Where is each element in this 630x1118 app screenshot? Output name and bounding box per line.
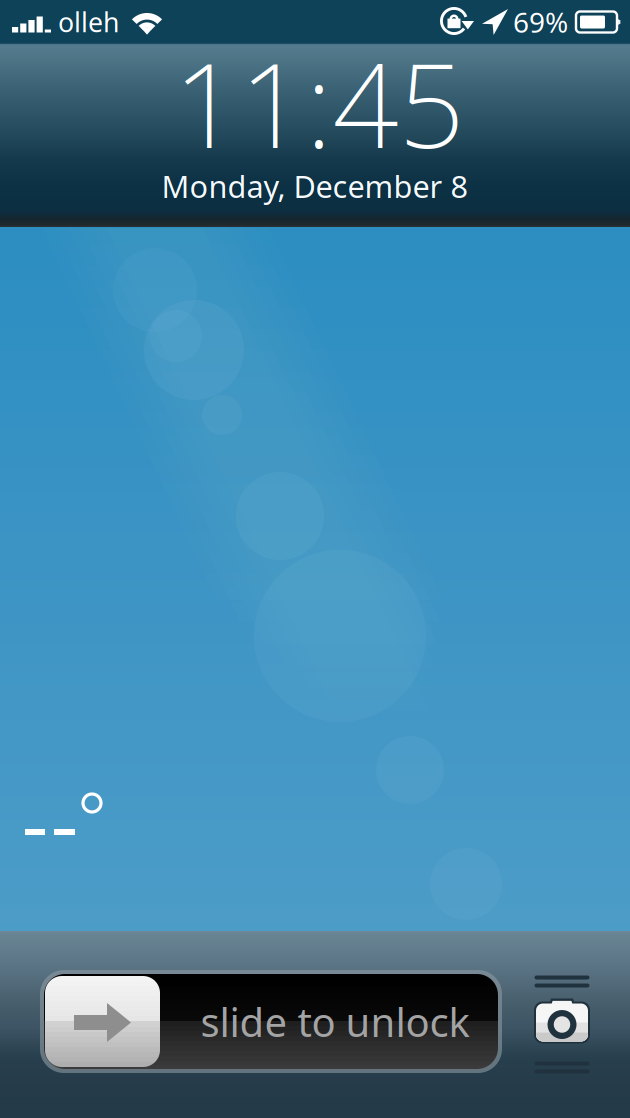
button[interactable]: Camera [534,975,590,1074]
staticText: slide to unlock [200,995,469,1048]
button[interactable]: Slide to unlock [40,970,502,1073]
staticText: Monday, December 8 [161,166,468,206]
staticText: 11:45 [173,26,464,180]
staticText: 69% [513,3,568,41]
staticText: olleh [58,4,119,40]
